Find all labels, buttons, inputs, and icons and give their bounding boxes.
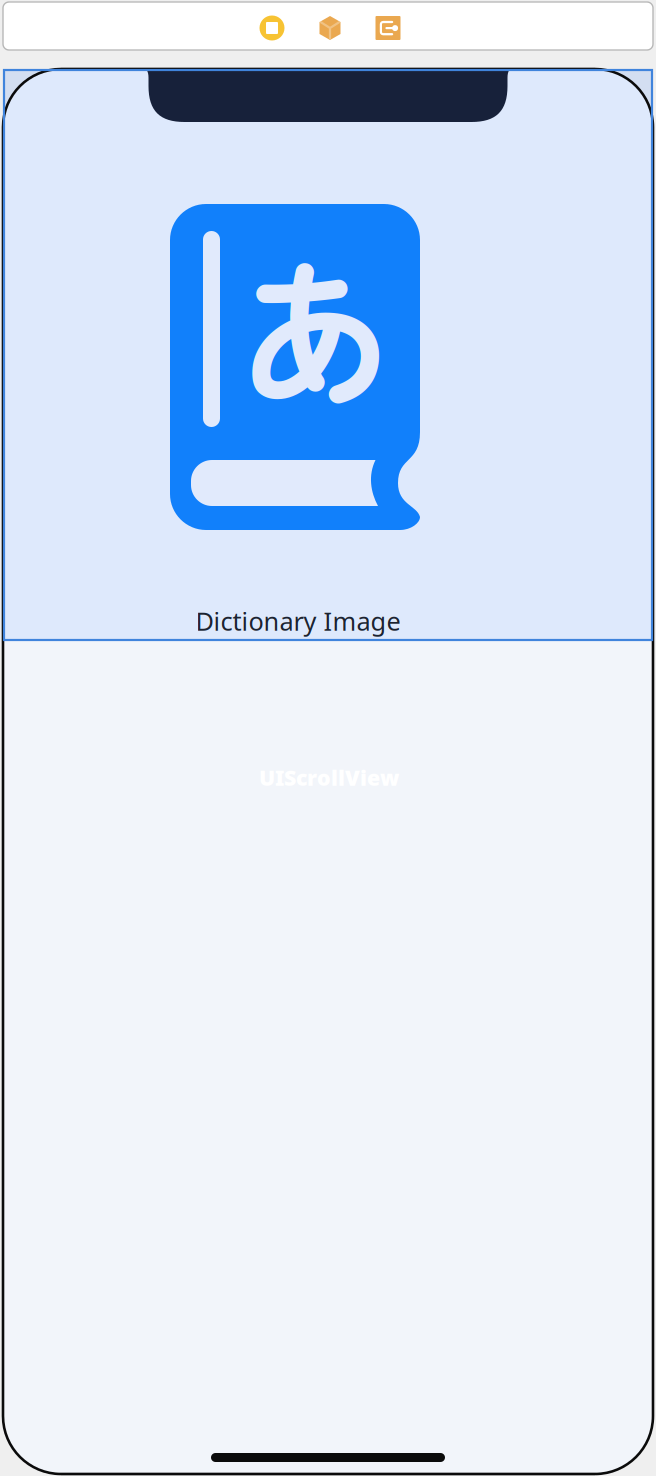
button[interactable]: Open preview in a separate window <box>368 8 408 48</box>
button[interactable]: Stop live preview <box>252 8 292 48</box>
staticText: UIScrollView <box>259 763 399 792</box>
staticText: あ <box>237 211 394 439</box>
button[interactable]: Inspect view hierarchy in 3D <box>310 8 350 48</box>
staticText: Dictionary Image <box>195 604 400 638</box>
